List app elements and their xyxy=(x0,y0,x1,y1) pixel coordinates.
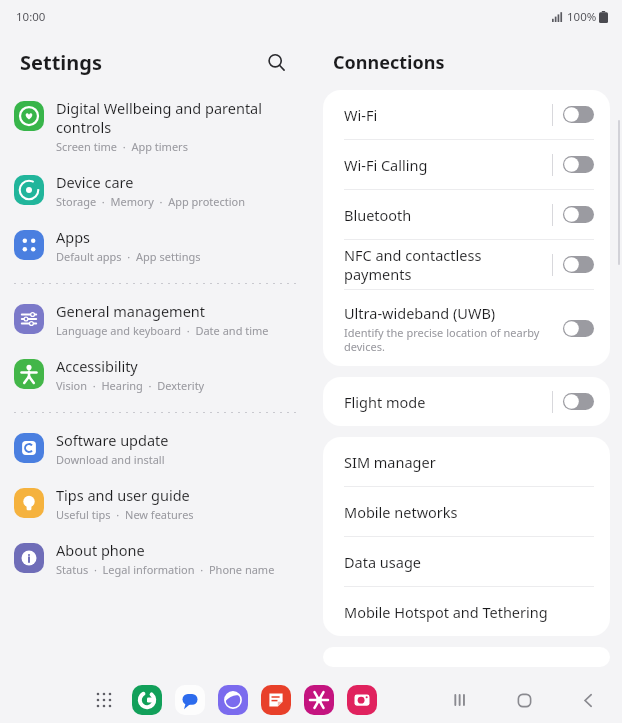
other: Toggle xyxy=(563,206,594,223)
staticText: Settings xyxy=(20,49,102,76)
button[interactable]: Mobile Hotspot and Tethering xyxy=(323,587,610,636)
staticText: Storage · Memory · App protection xyxy=(56,194,246,209)
other: Apps xyxy=(89,685,119,715)
staticText: Mobile Hotspot and Tethering xyxy=(344,602,548,622)
staticText: Data usage xyxy=(344,552,421,572)
other: Toggle xyxy=(563,106,594,123)
button[interactable]: Flight mode xyxy=(323,377,610,426)
button[interactable]: Accessibility xyxy=(0,347,311,403)
staticText: Download and install xyxy=(56,452,165,467)
staticText: Accessibility xyxy=(56,356,138,376)
staticText: Device care xyxy=(56,172,134,192)
button[interactable]: Apps xyxy=(0,218,311,274)
staticText: About phone xyxy=(56,540,145,560)
staticText: Identify the precise location of nearby … xyxy=(344,325,552,354)
staticText: Flight mode xyxy=(344,392,426,412)
button[interactable]: Data usage xyxy=(323,537,610,586)
button[interactable]: Apps xyxy=(89,685,119,715)
button[interactable]: Wi-Fi xyxy=(323,90,610,139)
other: Toggle xyxy=(563,256,594,273)
button[interactable]: About phone xyxy=(0,531,311,586)
button[interactable]: SIM manager xyxy=(323,437,610,486)
staticText: Ultra-wideband (UWB) xyxy=(344,303,496,323)
staticText: Mobile networks xyxy=(344,502,458,522)
button[interactable]: NFC and contactless payments xyxy=(323,240,610,289)
staticText: Screen time · App timers xyxy=(56,139,188,154)
staticText: Software update xyxy=(56,430,169,450)
staticText: Language and keyboard · Date and time xyxy=(56,323,269,338)
button[interactable]: Mobile networks xyxy=(323,487,610,536)
staticText: SIM manager xyxy=(344,452,436,472)
staticText: Wi-Fi xyxy=(344,105,378,125)
button[interactable]: Gallery xyxy=(304,685,334,715)
button[interactable]: Bluetooth xyxy=(323,190,610,239)
button[interactable]: Search xyxy=(261,47,291,77)
staticText: 10:00 xyxy=(16,9,46,25)
button[interactable]: Recents xyxy=(438,678,482,722)
button[interactable]: Phone xyxy=(132,685,162,715)
staticText: Vision · Hearing · Dexterity xyxy=(56,378,205,393)
staticText: Connections xyxy=(333,50,445,75)
button[interactable]: Digital Wellbeing and parental controls xyxy=(0,90,311,163)
staticText: Status · Legal information · Phone name xyxy=(56,562,275,577)
staticText: 100% xyxy=(567,9,597,25)
staticText: Useful tips · New features xyxy=(56,507,194,522)
staticText: Digital Wellbeing and parental controls xyxy=(56,98,299,137)
staticText: Wi-Fi Calling xyxy=(344,155,428,175)
button[interactable]: Camera xyxy=(347,685,377,715)
staticText: Tips and user guide xyxy=(56,485,190,505)
staticText: NFC and contactless payments xyxy=(344,245,552,284)
button[interactable]: Home xyxy=(502,678,546,722)
other: Toggle xyxy=(563,393,594,410)
other: Toggle xyxy=(563,156,594,173)
other: Toggle xyxy=(563,320,594,337)
staticText: General management xyxy=(56,301,206,321)
button[interactable]: Messages xyxy=(175,685,205,715)
button[interactable]: Back xyxy=(566,678,610,722)
button[interactable]: Device care xyxy=(0,163,311,218)
staticText: Apps xyxy=(56,227,91,247)
staticText: Default apps · App settings xyxy=(56,249,201,264)
staticText: Bluetooth xyxy=(344,205,412,225)
button[interactable]: General management xyxy=(0,292,311,347)
button[interactable]: Wi-Fi Calling xyxy=(323,140,610,189)
button[interactable]: Notes xyxy=(261,685,291,715)
button[interactable]: Ultra-wideband (UWB) xyxy=(323,290,610,366)
button[interactable]: Software update xyxy=(0,421,311,476)
button[interactable]: Tips and user guide xyxy=(0,476,311,531)
button[interactable]: Internet xyxy=(218,685,248,715)
